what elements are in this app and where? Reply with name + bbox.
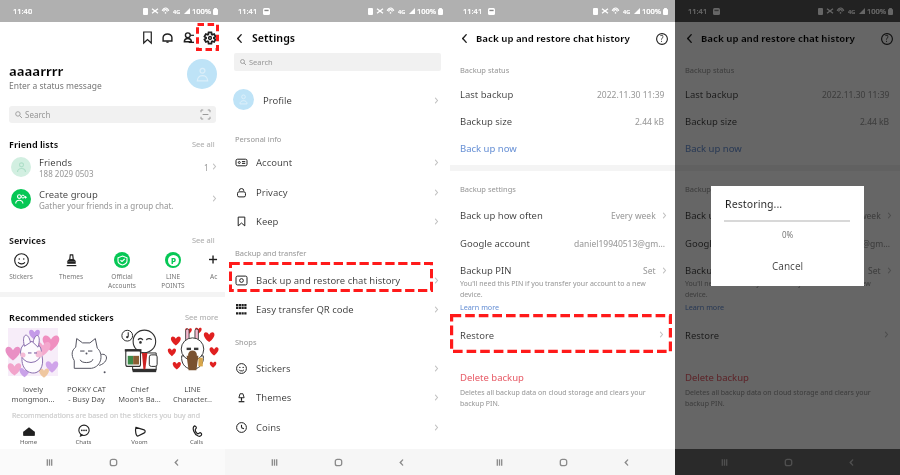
button[interactable]: Friends (0, 153, 225, 181)
staticText: 4G (848, 8, 856, 15)
button[interactable]: Backup PIN (675, 259, 900, 282)
staticText: Keep (256, 215, 279, 228)
button[interactable]: Profile photo (187, 59, 217, 89)
button[interactable]: Chief (115, 328, 164, 404)
button[interactable]: Help (879, 31, 894, 46)
staticText: Themes (56, 272, 86, 281)
button[interactable]: Back (386, 449, 416, 475)
button[interactable]: P (158, 250, 188, 290)
staticText: Back up how often (685, 209, 768, 222)
button[interactable]: See all (192, 139, 215, 149)
staticText: Back up and restore chat history (256, 274, 401, 287)
button[interactable]: Home (773, 449, 803, 475)
button[interactable]: Voom (126, 421, 153, 449)
staticText: Backup size (460, 115, 513, 128)
staticText: 1 (204, 162, 209, 173)
staticText: Every week (836, 210, 881, 222)
button[interactable]: lovely (8, 328, 58, 404)
button[interactable]: Back up how often (450, 204, 675, 227)
button[interactable]: Back up how often (675, 204, 900, 227)
staticText: 100% (867, 6, 887, 16)
staticText: You'll need this PIN if you transfer you… (685, 279, 871, 299)
staticText: Set (868, 265, 881, 277)
staticText: 11:40 (13, 6, 33, 16)
button[interactable]: Settings (201, 29, 218, 46)
button[interactable]: Chats (70, 421, 97, 449)
button[interactable]: See all (192, 235, 215, 245)
button[interactable]: Back (681, 30, 697, 46)
button[interactable]: Home (15, 421, 42, 449)
staticText: daniel19940513@gm... (799, 238, 890, 250)
button[interactable]: Home (323, 449, 353, 475)
button[interactable]: Back (836, 449, 866, 475)
button[interactable]: Stickers (6, 250, 36, 281)
button[interactable]: Restore (450, 322, 675, 348)
button[interactable]: Easy transfer QR code (225, 295, 450, 323)
button[interactable]: Back (456, 30, 472, 46)
staticText: Every week (611, 210, 656, 222)
button[interactable]: Delete backup (685, 371, 749, 384)
button[interactable]: Themes (225, 383, 450, 411)
staticText: Shops (235, 337, 257, 347)
button[interactable]: Profile (225, 86, 450, 114)
button[interactable]: Google account (675, 232, 900, 255)
button[interactable]: Account (225, 148, 450, 176)
button[interactable]: Last backup (450, 83, 675, 106)
button[interactable]: Keep (225, 207, 450, 235)
staticText: Search (25, 109, 51, 120)
button[interactable]: Coins (225, 413, 450, 441)
staticText: Back up and restore chat history (701, 32, 855, 45)
button[interactable]: Notifications (159, 29, 176, 46)
button[interactable]: Search (9, 106, 216, 123)
staticText: Stickers (6, 272, 36, 281)
staticText: 0% (782, 229, 794, 240)
staticText: LINE (168, 384, 217, 394)
button[interactable]: Backup size (675, 110, 900, 133)
button[interactable]: Themes (56, 250, 86, 281)
staticText: You'll need this PIN if you transfer you… (460, 279, 646, 299)
button[interactable]: Back up now (450, 138, 675, 160)
button[interactable]: See more (185, 312, 219, 322)
staticText: Create group (39, 188, 98, 201)
button[interactable]: Back up and restore chat history (225, 266, 450, 294)
staticText: Last backup (685, 88, 739, 101)
button[interactable]: Learn more (460, 302, 500, 312)
button[interactable]: Back up now (675, 138, 900, 160)
button[interactable]: Restore (675, 322, 900, 348)
button[interactable]: Learn more (685, 302, 725, 312)
button[interactable]: Search (234, 53, 441, 71)
button[interactable]: Privacy (225, 178, 450, 206)
button[interactable]: Calls (183, 421, 210, 449)
staticText: Account (256, 156, 293, 169)
button[interactable]: Recent apps (709, 449, 739, 475)
staticText: 2.44 kB (635, 116, 665, 128)
button[interactable]: Official (107, 250, 137, 290)
button[interactable]: Delete backup (460, 371, 524, 384)
button[interactable]: Recent apps (34, 449, 64, 475)
button[interactable]: Back (161, 449, 191, 475)
button[interactable]: Recent apps (259, 449, 289, 475)
staticText: Restoring... (725, 197, 783, 211)
button[interactable]: LINE (168, 328, 217, 404)
staticText: 2022.11.30 11:39 (597, 89, 665, 101)
button[interactable]: Create group (0, 185, 225, 213)
staticText: Chats (70, 438, 97, 446)
button[interactable]: POKKY CAT (62, 328, 111, 404)
button[interactable]: Back (231, 30, 247, 46)
button[interactable]: Cancel (711, 254, 864, 278)
button[interactable]: Add friends (180, 29, 197, 46)
staticText: aaaarrrr (9, 62, 64, 80)
button[interactable]: Last backup (675, 83, 900, 106)
button[interactable]: Backup PIN (450, 259, 675, 282)
button[interactable]: Backup size (450, 110, 675, 133)
staticText: 2022.11.30 11:39 (822, 89, 890, 101)
button[interactable]: Home (548, 449, 578, 475)
button[interactable]: Recent apps (484, 449, 514, 475)
button[interactable]: Help (654, 31, 669, 46)
button[interactable]: Back (611, 449, 641, 475)
button[interactable]: Google account (450, 232, 675, 255)
button[interactable]: Stickers (225, 354, 450, 382)
button[interactable]: Bookmark (139, 29, 156, 46)
button[interactable]: Home (98, 449, 128, 475)
staticText: Accounts (107, 281, 137, 290)
